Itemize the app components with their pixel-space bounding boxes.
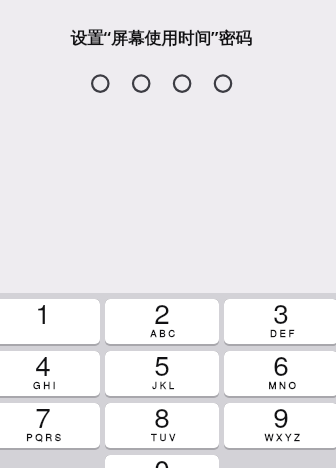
staticText: GHI [33, 378, 58, 392]
button[interactable]: 0 [105, 455, 219, 468]
staticText: 5 [154, 351, 170, 384]
staticText: 6 [273, 351, 289, 384]
staticText: 3 [273, 299, 289, 332]
other: Passcode entry [0, 0, 336, 468]
button[interactable]: 4 [0, 351, 100, 398]
button[interactable]: 3 [224, 299, 336, 346]
staticText: ABC [150, 326, 178, 340]
staticText: 0 [154, 455, 170, 468]
button[interactable]: 2 [105, 299, 219, 346]
staticText: 设置“屏幕使用时间”密码 [70, 26, 252, 49]
staticText: 1 [35, 299, 51, 332]
staticText: DEF [270, 326, 297, 340]
button[interactable]: 1 [0, 299, 100, 346]
staticText: 2 [154, 299, 170, 332]
staticText: MNO [268, 378, 299, 392]
button[interactable]: 8 [105, 403, 219, 450]
button[interactable]: 5 [105, 351, 219, 398]
button[interactable]: 9 [224, 403, 336, 450]
staticText: 7 [35, 403, 51, 436]
staticText: 9 [273, 403, 289, 436]
button[interactable]: 6 [224, 351, 336, 398]
staticText: 8 [154, 403, 170, 436]
staticText: 4 [35, 351, 51, 384]
staticText: WXYZ [264, 430, 303, 444]
button[interactable]: 7 [0, 403, 100, 450]
staticText: PQRS [26, 430, 64, 444]
staticText: TUV [151, 430, 178, 444]
staticText: JKL [152, 378, 177, 392]
